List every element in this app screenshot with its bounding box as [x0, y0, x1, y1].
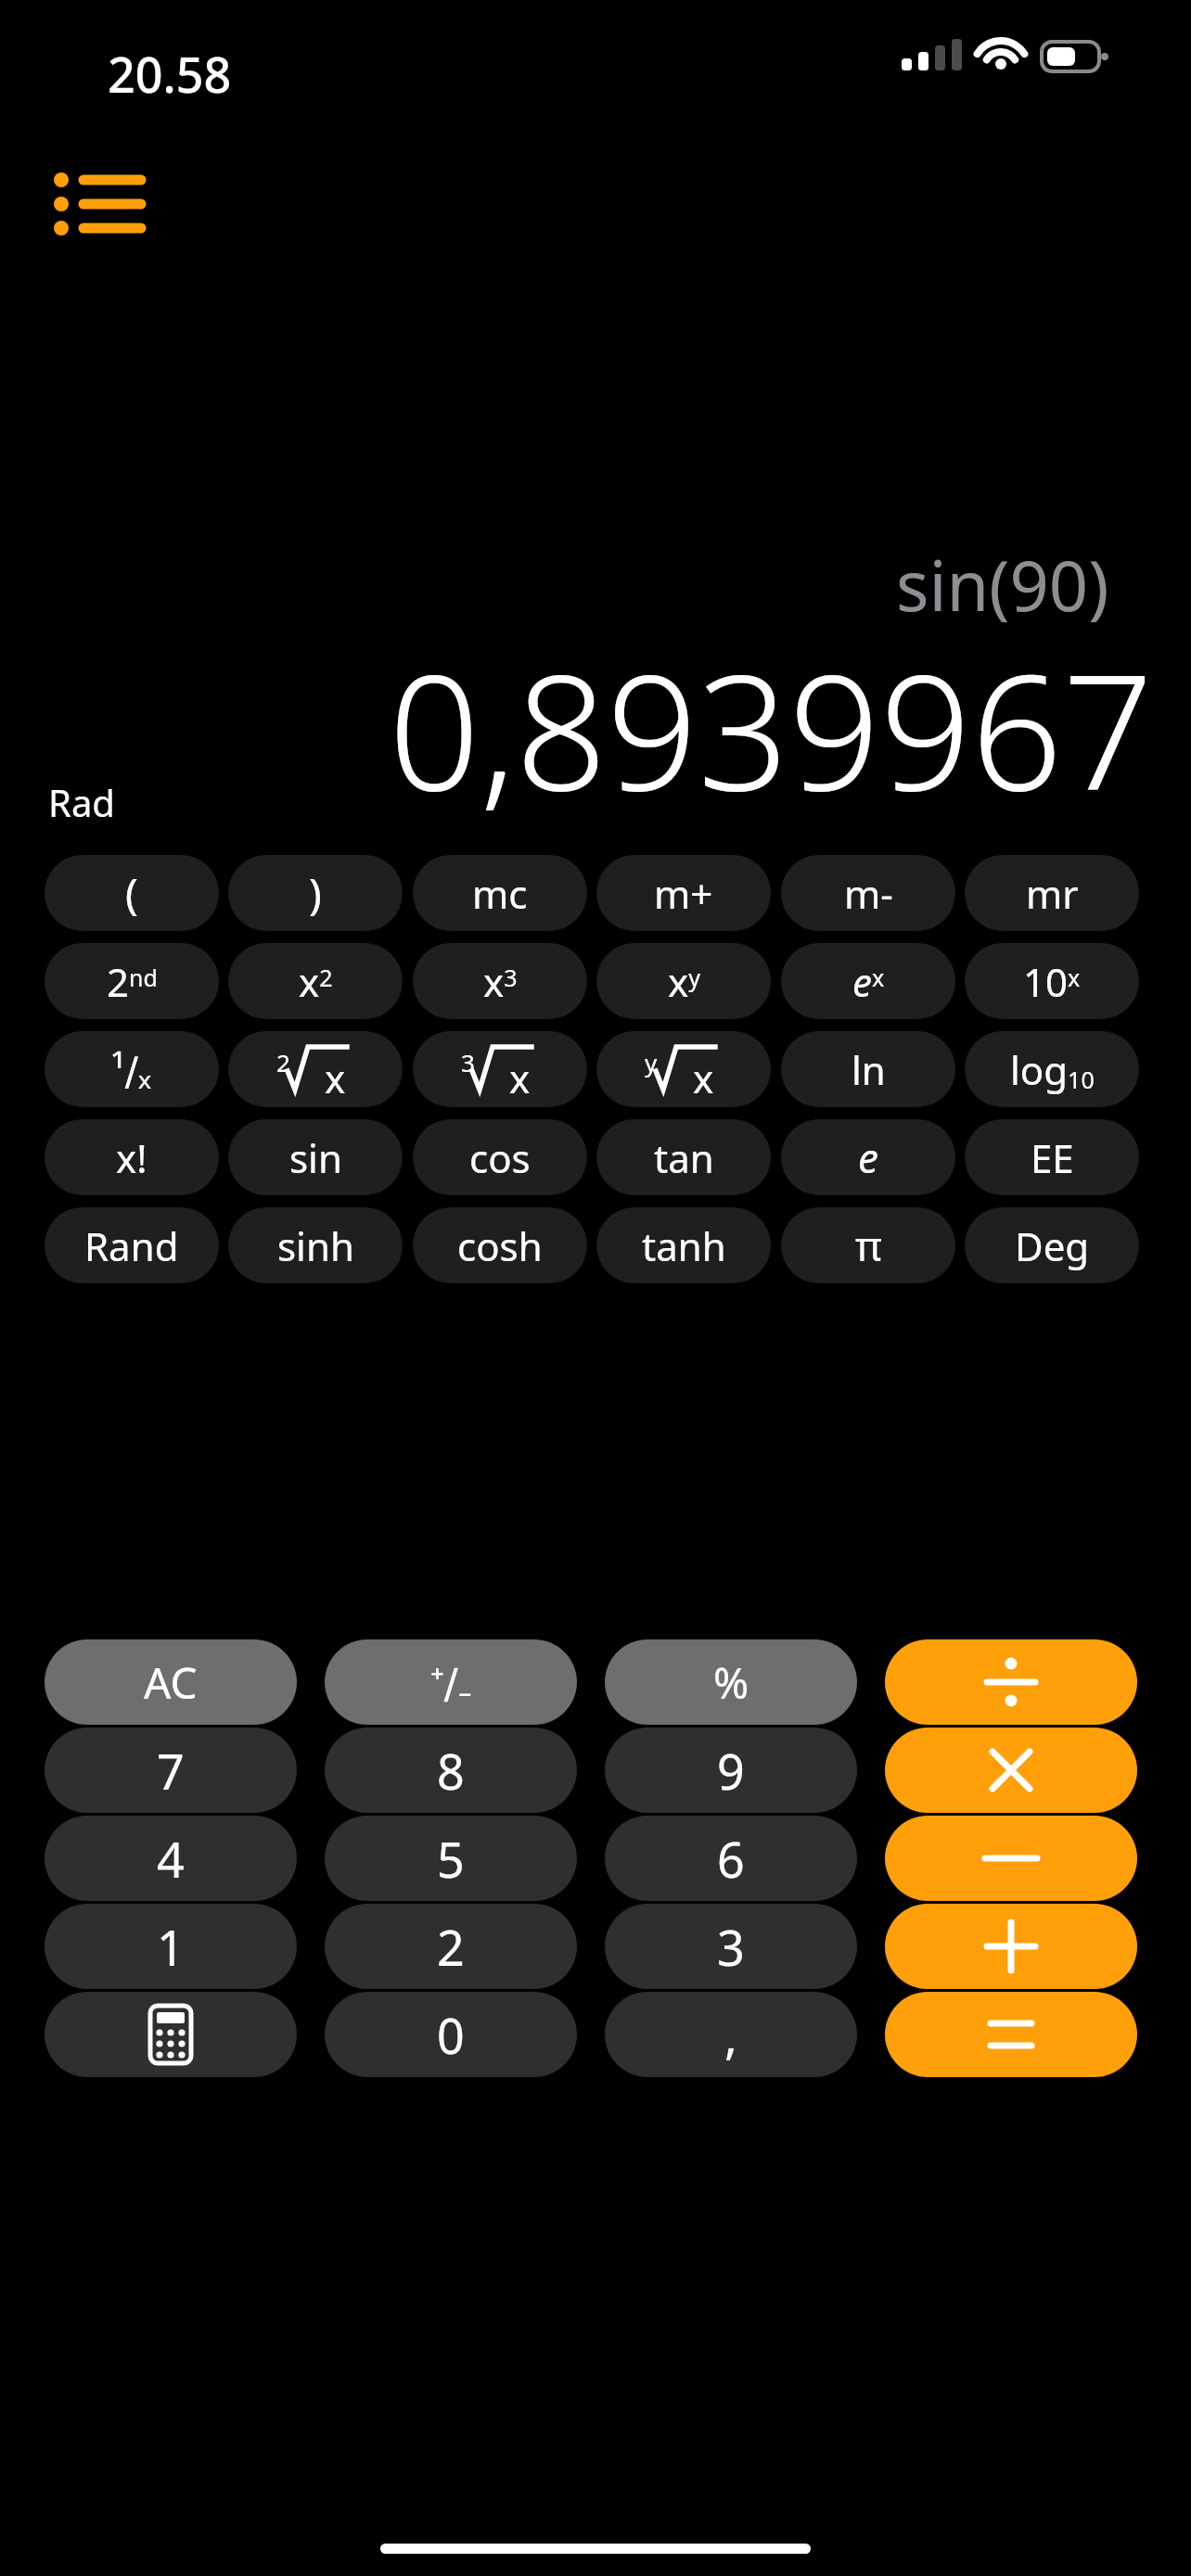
staticText: 9 — [717, 1738, 745, 1804]
button[interactable]: ( — [45, 855, 219, 931]
button[interactable]: EE — [965, 1119, 1139, 1195]
staticText: 3 — [717, 1914, 745, 1980]
button[interactable]: x3 — [413, 943, 587, 1019]
button[interactable]: Add — [885, 1904, 1137, 1989]
staticText: ¹∕ₓ — [111, 1043, 152, 1096]
staticText: y — [645, 1046, 658, 1078]
button[interactable]: mr — [965, 855, 1139, 931]
button[interactable]: 1 — [45, 1904, 297, 1989]
button[interactable]: ⁺∕₋ — [325, 1639, 577, 1725]
staticText: Deg — [1015, 1219, 1090, 1272]
button[interactable]: 2nd — [45, 943, 219, 1019]
button[interactable]: Menu — [39, 167, 141, 243]
button[interactable]: Multiply — [885, 1728, 1137, 1813]
button[interactable]: Deg — [965, 1207, 1139, 1283]
button[interactable]: 2 — [325, 1904, 577, 1989]
staticText: 10x — [1023, 955, 1081, 1008]
staticText: π — [855, 1218, 882, 1273]
staticText: x — [693, 1052, 714, 1104]
staticText: Rad — [48, 777, 115, 827]
button[interactable]: nth root — [596, 1031, 771, 1107]
button[interactable]: m- — [781, 855, 955, 931]
staticText: x3 — [483, 955, 518, 1008]
button[interactable]: ln — [781, 1031, 955, 1107]
button[interactable]: Rand — [45, 1207, 219, 1283]
button[interactable]: 10x — [965, 943, 1139, 1019]
staticText: mr — [1026, 867, 1079, 920]
button[interactable]: cosh — [413, 1207, 587, 1283]
staticText: tan — [654, 1131, 714, 1184]
button[interactable]: 7 — [45, 1728, 297, 1813]
staticText: EE — [1031, 1131, 1074, 1184]
staticText: sinh — [277, 1219, 354, 1272]
button[interactable]: AC — [45, 1639, 297, 1725]
button[interactable]: cos — [413, 1119, 587, 1195]
staticText: xy — [668, 955, 700, 1008]
button[interactable]: 4 — [45, 1816, 297, 1901]
button[interactable]: 9 — [605, 1728, 857, 1813]
button[interactable]: 5 — [325, 1816, 577, 1901]
staticText: e — [858, 1129, 878, 1185]
staticText: , — [724, 2002, 737, 2068]
staticText: 8 — [437, 1738, 465, 1804]
button[interactable]: tanh — [596, 1207, 771, 1283]
staticText: tanh — [642, 1219, 726, 1272]
button[interactable]: xy — [596, 943, 771, 1019]
button[interactable]: π — [781, 1207, 955, 1283]
button[interactable]: tan — [596, 1119, 771, 1195]
button[interactable]: square root — [228, 1031, 403, 1107]
staticText: log10 — [1010, 1043, 1095, 1096]
button[interactable]: mc — [413, 855, 587, 931]
staticText: cos — [469, 1131, 531, 1184]
button[interactable]: ) — [228, 855, 403, 931]
staticText: 0,8939967 — [389, 619, 1154, 836]
button[interactable]: sin — [228, 1119, 403, 1195]
staticText: ) — [309, 864, 322, 923]
staticText: mc — [472, 867, 528, 920]
button[interactable]: 0 — [325, 1992, 577, 2077]
staticText: ln — [852, 1043, 886, 1096]
button[interactable]: 3 — [605, 1904, 857, 1989]
button[interactable]: x2 — [228, 943, 403, 1019]
button[interactable]: 6 — [605, 1816, 857, 1901]
staticText: 20.58 — [108, 41, 232, 107]
button[interactable]: , — [605, 1992, 857, 2077]
button[interactable]: sinh — [228, 1207, 403, 1283]
staticText: ex — [852, 955, 885, 1008]
staticText: 0 — [437, 2002, 465, 2068]
staticText: x — [509, 1052, 531, 1104]
staticText: 6 — [717, 1826, 745, 1892]
button[interactable]: x! — [45, 1119, 219, 1195]
staticText: AC — [144, 1653, 198, 1712]
button[interactable]: 8 — [325, 1728, 577, 1813]
staticText: cosh — [457, 1219, 543, 1272]
staticText: 2 — [437, 1914, 465, 1980]
button[interactable]: e — [781, 1119, 955, 1195]
staticText: 5 — [437, 1826, 465, 1892]
button[interactable]: Subtract — [885, 1816, 1137, 1901]
staticText: Rand — [84, 1219, 179, 1272]
button[interactable]: Divide — [885, 1639, 1137, 1725]
staticText: 2nd — [107, 955, 158, 1008]
button[interactable]: ex — [781, 943, 955, 1019]
button[interactable]: cube root — [413, 1031, 587, 1107]
staticText: x2 — [299, 955, 333, 1008]
button[interactable]: log10 — [965, 1031, 1139, 1107]
staticText: 3 — [461, 1046, 475, 1078]
staticText: 1 — [157, 1914, 185, 1980]
staticText: sin(90) — [896, 538, 1109, 631]
staticText: x — [325, 1052, 346, 1104]
staticText: m- — [844, 867, 893, 920]
staticText: ⁺∕₋ — [430, 1654, 472, 1710]
staticText: ( — [125, 864, 138, 923]
button[interactable]: Equals — [885, 1992, 1137, 2077]
button[interactable]: Calculator — [45, 1992, 297, 2077]
staticText: 7 — [157, 1738, 185, 1804]
button[interactable]: ¹∕ₓ — [45, 1031, 219, 1107]
staticText: % — [713, 1653, 749, 1712]
staticText: sin — [289, 1131, 342, 1184]
button[interactable]: % — [605, 1639, 857, 1725]
staticText: m+ — [654, 867, 713, 920]
button[interactable]: m+ — [596, 855, 771, 931]
staticText: x! — [116, 1131, 147, 1184]
